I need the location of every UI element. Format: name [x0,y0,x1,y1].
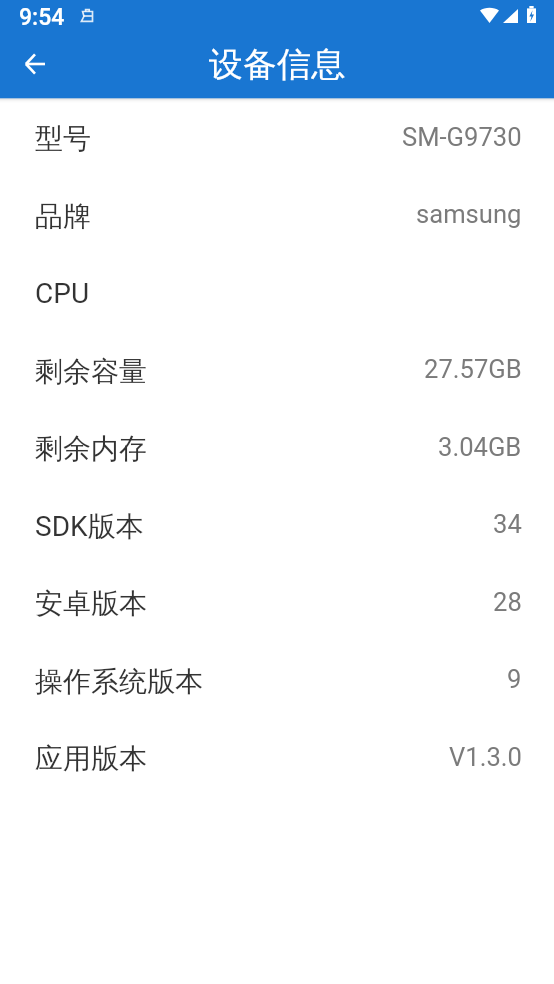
staticText: 34 [493,509,522,539]
staticText: SDK版本 [35,509,144,544]
staticText: 剩余内存 [35,431,147,466]
staticText: V1.3.0 [449,742,522,772]
staticText: 9:54 [19,4,65,31]
button[interactable]: CPU [0,253,554,330]
staticText: 品牌 [35,199,91,234]
staticText: 型号 [35,121,91,156]
staticText: 应用版本 [35,741,147,776]
button[interactable]: 剩余内存 [0,408,554,485]
staticText: CPU [35,277,90,310]
button[interactable]: 应用版本 [0,718,554,795]
button[interactable]: 操作系统版本 [0,640,554,718]
button[interactable]: 品牌 [0,175,554,253]
staticText: 安卓版本 [35,586,147,621]
staticText: 剩余容量 [35,354,147,389]
button[interactable]: 安卓版本 [0,563,554,640]
staticText: 28 [493,587,522,617]
staticText: samsung [416,199,522,229]
button[interactable]: 剩余容量 [0,330,554,408]
staticText: 9 [507,664,522,694]
button[interactable]: SDK版本 [0,485,554,563]
staticText: 27.57GB [424,354,522,384]
staticText: 3.04GB [438,432,522,462]
staticText: 操作系统版本 [35,664,203,699]
button[interactable]: Back [11,40,59,88]
staticText: 设备信息 [0,43,554,86]
button[interactable]: 型号 [0,98,554,175]
staticText: SM-G9730 [402,122,522,152]
